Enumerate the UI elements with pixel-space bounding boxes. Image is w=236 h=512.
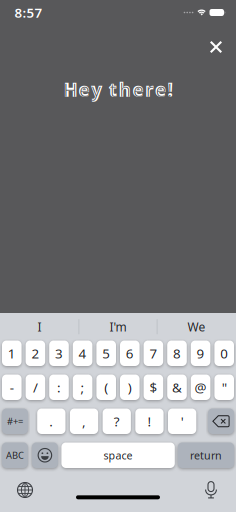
staticText: H bbox=[63, 77, 77, 102]
staticText: : bbox=[57, 378, 61, 396]
button[interactable]: We bbox=[157, 313, 236, 340]
staticText: 2 bbox=[31, 344, 39, 362]
staticText: space bbox=[104, 448, 133, 462]
staticText: @ bbox=[195, 378, 207, 396]
button[interactable]: Close bbox=[205, 36, 227, 58]
staticText: & bbox=[172, 378, 182, 396]
staticText: I'm bbox=[109, 319, 126, 335]
staticText: 0 bbox=[220, 344, 228, 362]
staticText: ABC bbox=[6, 449, 24, 461]
staticText: / bbox=[33, 378, 38, 396]
button[interactable]: I'm bbox=[79, 313, 157, 340]
button[interactable]: space bbox=[61, 442, 175, 468]
staticText: ) bbox=[128, 378, 132, 396]
button[interactable]: ? bbox=[103, 408, 131, 434]
button[interactable]: ; bbox=[73, 374, 92, 400]
button[interactable]: : bbox=[49, 374, 69, 400]
button[interactable]: 7 bbox=[144, 340, 163, 366]
staticText: return bbox=[190, 448, 222, 462]
staticText: ' bbox=[181, 412, 184, 430]
button[interactable]: I bbox=[0, 313, 78, 340]
staticText: 7 bbox=[149, 344, 157, 362]
staticText: e bbox=[156, 77, 166, 102]
button[interactable]: . bbox=[37, 408, 65, 434]
staticText: ; bbox=[81, 378, 85, 396]
button[interactable]: 6 bbox=[120, 340, 140, 366]
button[interactable]: ' bbox=[168, 408, 196, 434]
staticText: e bbox=[79, 77, 89, 102]
button[interactable]: " bbox=[214, 374, 234, 400]
button[interactable]: ABC bbox=[2, 442, 28, 468]
button[interactable]: & bbox=[167, 374, 187, 400]
button[interactable]: return bbox=[178, 442, 234, 468]
staticText: . bbox=[49, 412, 53, 430]
button[interactable]: - bbox=[2, 374, 22, 400]
staticText: - bbox=[10, 378, 14, 396]
staticText: h bbox=[118, 77, 131, 102]
button[interactable]: #+= bbox=[2, 408, 28, 434]
staticText: e bbox=[132, 77, 144, 102]
staticText: r bbox=[146, 77, 153, 102]
button[interactable]: / bbox=[26, 374, 45, 400]
button[interactable]: 3 bbox=[49, 340, 69, 366]
button[interactable]: Next keyboard bbox=[10, 475, 40, 505]
button[interactable]: ) bbox=[120, 374, 140, 400]
button[interactable]: Dictation bbox=[196, 475, 226, 505]
button[interactable]: 2 bbox=[26, 340, 45, 366]
staticText: 9 bbox=[197, 344, 205, 362]
button[interactable]: ( bbox=[96, 374, 116, 400]
staticText: r bbox=[145, 77, 154, 102]
staticText: 6 bbox=[126, 344, 134, 362]
staticText: e bbox=[155, 77, 167, 102]
staticText: y bbox=[91, 77, 102, 102]
button[interactable]: 4 bbox=[73, 340, 92, 366]
staticText: #+= bbox=[7, 415, 23, 427]
staticText: 4 bbox=[79, 344, 87, 362]
staticText: y bbox=[92, 77, 101, 102]
staticText: H bbox=[63, 77, 77, 102]
button[interactable]: $ bbox=[144, 374, 163, 400]
staticText: ! bbox=[147, 412, 151, 430]
staticText: t bbox=[110, 77, 116, 102]
staticText: h bbox=[119, 77, 130, 102]
staticText: ? bbox=[114, 412, 120, 430]
staticText: ( bbox=[104, 378, 108, 396]
staticText: 8 bbox=[173, 344, 181, 362]
button[interactable]: 1 bbox=[2, 340, 22, 366]
staticText: $ bbox=[149, 378, 157, 396]
staticText: I bbox=[37, 319, 41, 335]
staticText: e bbox=[78, 77, 90, 102]
button[interactable]: ! bbox=[135, 408, 164, 434]
button[interactable]: 8 bbox=[167, 340, 187, 366]
button[interactable]: , bbox=[70, 408, 98, 434]
staticText: e bbox=[133, 77, 143, 102]
staticText: ! bbox=[168, 77, 173, 102]
staticText: ! bbox=[168, 77, 173, 102]
button[interactable]: Delete bbox=[208, 408, 234, 434]
staticText: t bbox=[109, 77, 118, 102]
staticText: , bbox=[82, 412, 86, 430]
staticText: 1 bbox=[8, 344, 16, 362]
button[interactable]: Emoji bbox=[32, 442, 58, 468]
staticText: 8:57 bbox=[14, 4, 42, 21]
staticText: 3 bbox=[55, 344, 63, 362]
button[interactable]: 0 bbox=[214, 340, 234, 366]
button[interactable]: @ bbox=[191, 374, 210, 400]
staticText: " bbox=[222, 378, 227, 396]
button[interactable]: 9 bbox=[191, 340, 210, 366]
staticText: 5 bbox=[102, 344, 110, 362]
button[interactable]: 5 bbox=[96, 340, 116, 366]
staticText: We bbox=[188, 319, 206, 335]
